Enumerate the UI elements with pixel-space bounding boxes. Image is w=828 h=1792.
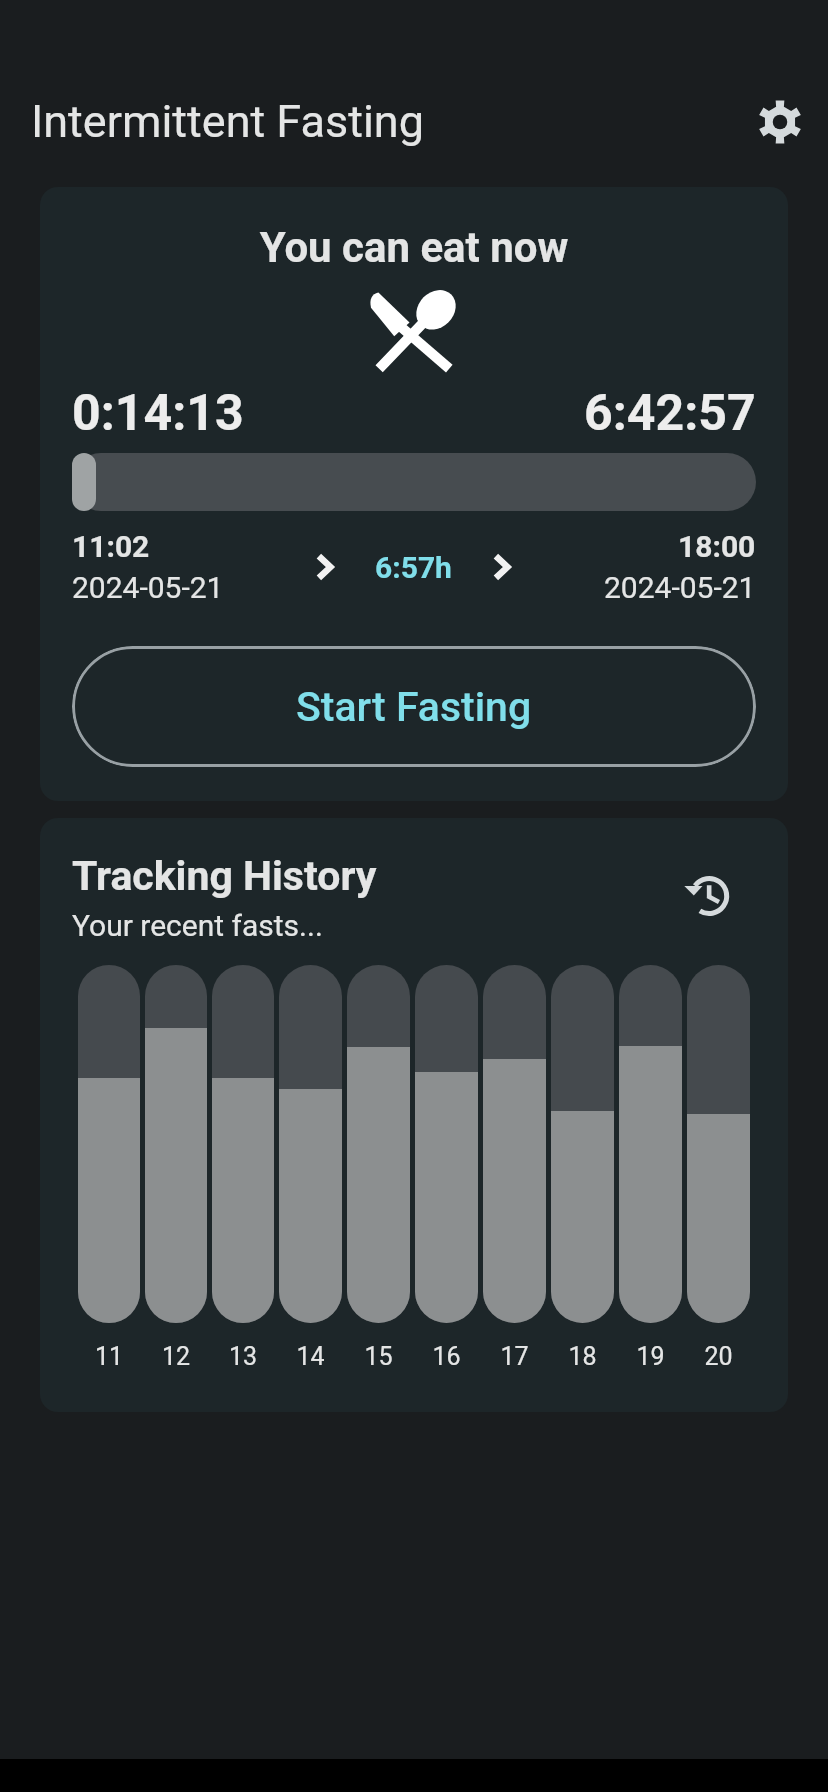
staticText: Start Fasting: [296, 683, 532, 731]
staticText: 17: [483, 1342, 546, 1371]
button[interactable]: History: [679, 868, 735, 924]
staticText: 11:02: [72, 529, 150, 564]
staticText: 20: [687, 1342, 750, 1371]
button[interactable]: Settings: [744, 86, 816, 158]
staticText: 11: [78, 1342, 140, 1371]
staticText: 18: [551, 1342, 614, 1371]
button[interactable]: 18:00: [519, 529, 756, 605]
staticText: 14: [279, 1342, 342, 1371]
staticText: 13: [212, 1342, 274, 1371]
staticText: Intermittent Fasting: [31, 95, 424, 148]
staticText: Tracking History: [72, 852, 377, 900]
staticText: 15: [347, 1342, 410, 1371]
staticText: 2024-05-21: [72, 570, 224, 605]
staticText: 0:14:13: [72, 384, 244, 443]
staticText: 6:57h: [375, 550, 452, 585]
staticText: 18:00: [678, 529, 756, 564]
staticText: 2024-05-21: [604, 570, 756, 605]
staticText: You can eat now: [72, 223, 756, 272]
button[interactable]: Start Fasting: [72, 646, 756, 767]
button[interactable]: Adjust end time: [485, 550, 519, 584]
staticText: 16: [415, 1342, 478, 1371]
button[interactable]: 11:02: [72, 529, 308, 605]
staticText: 6:42:57: [584, 384, 756, 443]
staticText: Your recent fasts...: [72, 908, 323, 943]
staticText: 19: [619, 1342, 682, 1371]
staticText: 12: [145, 1342, 207, 1371]
button[interactable]: Adjust start time: [308, 550, 342, 584]
